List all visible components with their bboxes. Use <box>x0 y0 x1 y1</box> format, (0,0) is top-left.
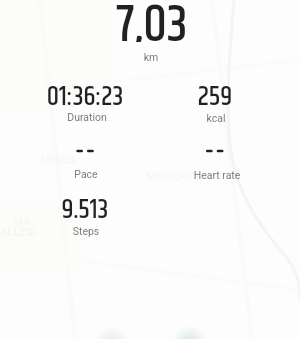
button[interactable]: Distance 7,03 kilometres <box>75 0 225 68</box>
button[interactable]: Heart rate not available <box>150 136 280 184</box>
staticText: 7,03 <box>82 0 222 42</box>
staticText: Heart rate <box>147 169 287 181</box>
staticText: 259 <box>145 77 285 118</box>
staticText: Duration <box>17 111 157 123</box>
staticText: km <box>81 51 221 63</box>
button[interactable]: Duration 01:36:23 <box>20 72 150 122</box>
staticText: Pace <box>16 168 156 180</box>
button[interactable]: Calories 259 kcal <box>150 72 280 122</box>
staticText: ALLESİ <box>0 226 88 239</box>
staticText: 01:36:23 <box>15 77 155 118</box>
button[interactable]: Pace not available <box>20 136 150 184</box>
button[interactable]: 9.513 steps <box>20 186 150 238</box>
staticText: 9.513 <box>15 190 155 231</box>
staticText: Steps <box>16 225 156 237</box>
staticText: MA <box>0 215 92 228</box>
staticText: MENDERES <box>102 171 242 183</box>
staticText: kcal <box>146 112 286 124</box>
